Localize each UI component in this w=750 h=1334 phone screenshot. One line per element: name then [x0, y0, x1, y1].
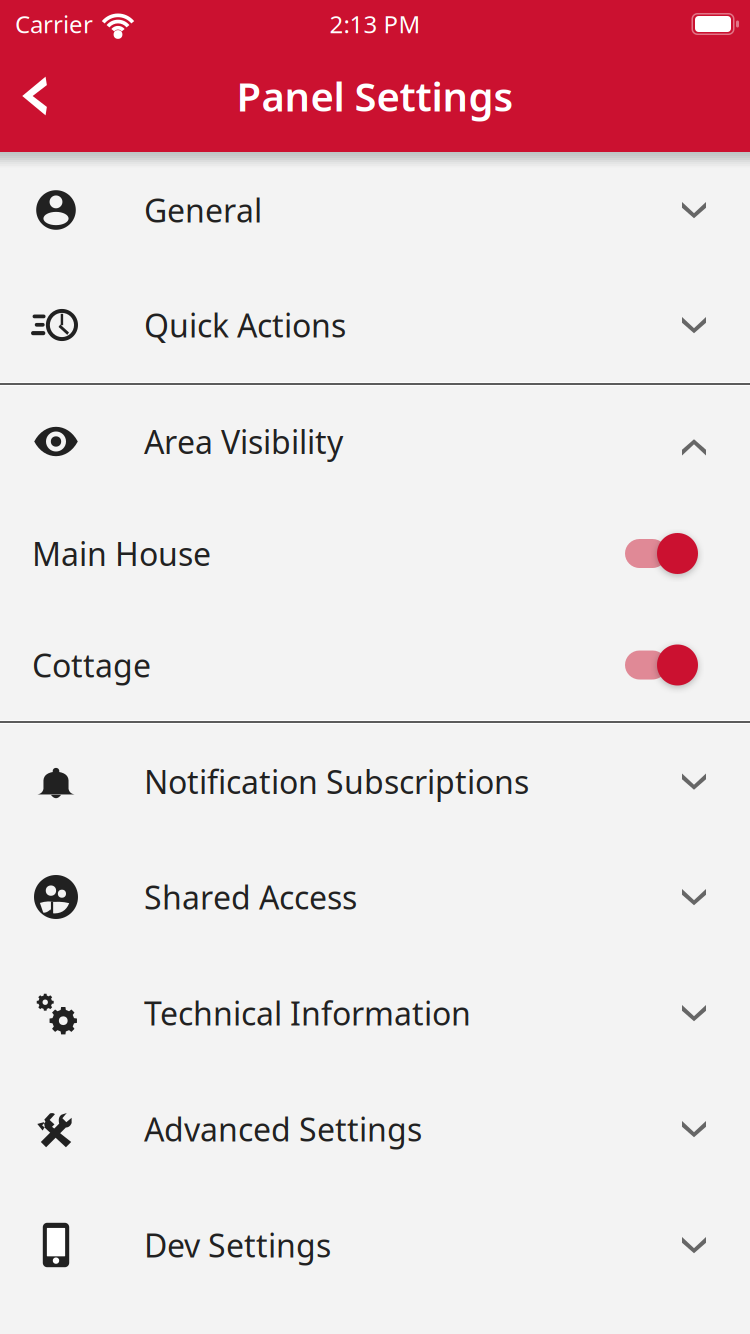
staticText: Technical Information — [144, 992, 471, 1034]
button[interactable]: Main House — [0, 497, 750, 610]
staticText: 2:13 PM — [329, 8, 420, 40]
button[interactable]: Dev Settings — [0, 1187, 750, 1303]
staticText: Advanced Settings — [144, 1108, 422, 1150]
button[interactable]: Back — [0, 61, 70, 131]
staticText: Notification Subscriptions — [144, 760, 529, 803]
button[interactable]: Technical Information — [0, 955, 750, 1071]
staticText: General — [144, 189, 262, 231]
button[interactable]: Shared Access — [0, 839, 750, 955]
staticText: Panel Settings — [236, 69, 513, 122]
staticText: Main House — [32, 532, 211, 575]
staticText: Cottage — [32, 644, 151, 686]
button[interactable]: General — [0, 152, 750, 268]
button[interactable]: Quick Actions — [0, 268, 750, 382]
button[interactable]: Cottage — [0, 610, 750, 720]
staticText: Dev Settings — [144, 1224, 331, 1266]
button[interactable]: Notification Subscriptions — [0, 724, 750, 839]
staticText: Shared Access — [144, 876, 357, 918]
staticText: Quick Actions — [144, 304, 346, 346]
button[interactable]: Area Visibility — [0, 386, 750, 497]
staticText: Carrier — [15, 8, 93, 40]
staticText: Area Visibility — [144, 420, 343, 463]
button[interactable]: Advanced Settings — [0, 1071, 750, 1187]
